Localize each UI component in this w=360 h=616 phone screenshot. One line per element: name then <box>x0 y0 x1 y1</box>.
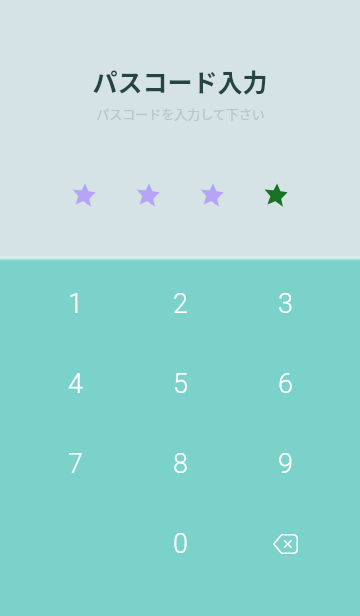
button[interactable]: 6 <box>233 344 338 424</box>
button[interactable]: 3 <box>233 264 338 344</box>
staticText: 2 <box>173 288 188 320</box>
button[interactable]: 1 <box>23 264 128 344</box>
button[interactable]: 4 <box>23 344 128 424</box>
button[interactable]: 8 <box>128 424 233 504</box>
staticText: 4 <box>68 368 83 400</box>
button[interactable]: 0 <box>128 504 233 584</box>
staticText: 1 <box>68 288 83 320</box>
staticText: 8 <box>173 448 188 480</box>
staticText: パスコード入力 <box>92 63 268 99</box>
button[interactable]: 9 <box>233 424 338 504</box>
button[interactable]: 5 <box>128 344 233 424</box>
button[interactable]: Backspace <box>233 504 338 584</box>
staticText: 5 <box>173 368 188 400</box>
staticText: 7 <box>68 448 83 480</box>
button[interactable]: 2 <box>128 264 233 344</box>
staticText: パスコードを入力して下さい <box>96 104 265 123</box>
staticText: 9 <box>278 448 293 480</box>
staticText: 6 <box>278 368 293 400</box>
button[interactable]: 7 <box>23 424 128 504</box>
staticText: 3 <box>278 288 293 320</box>
staticText: 0 <box>173 528 188 560</box>
